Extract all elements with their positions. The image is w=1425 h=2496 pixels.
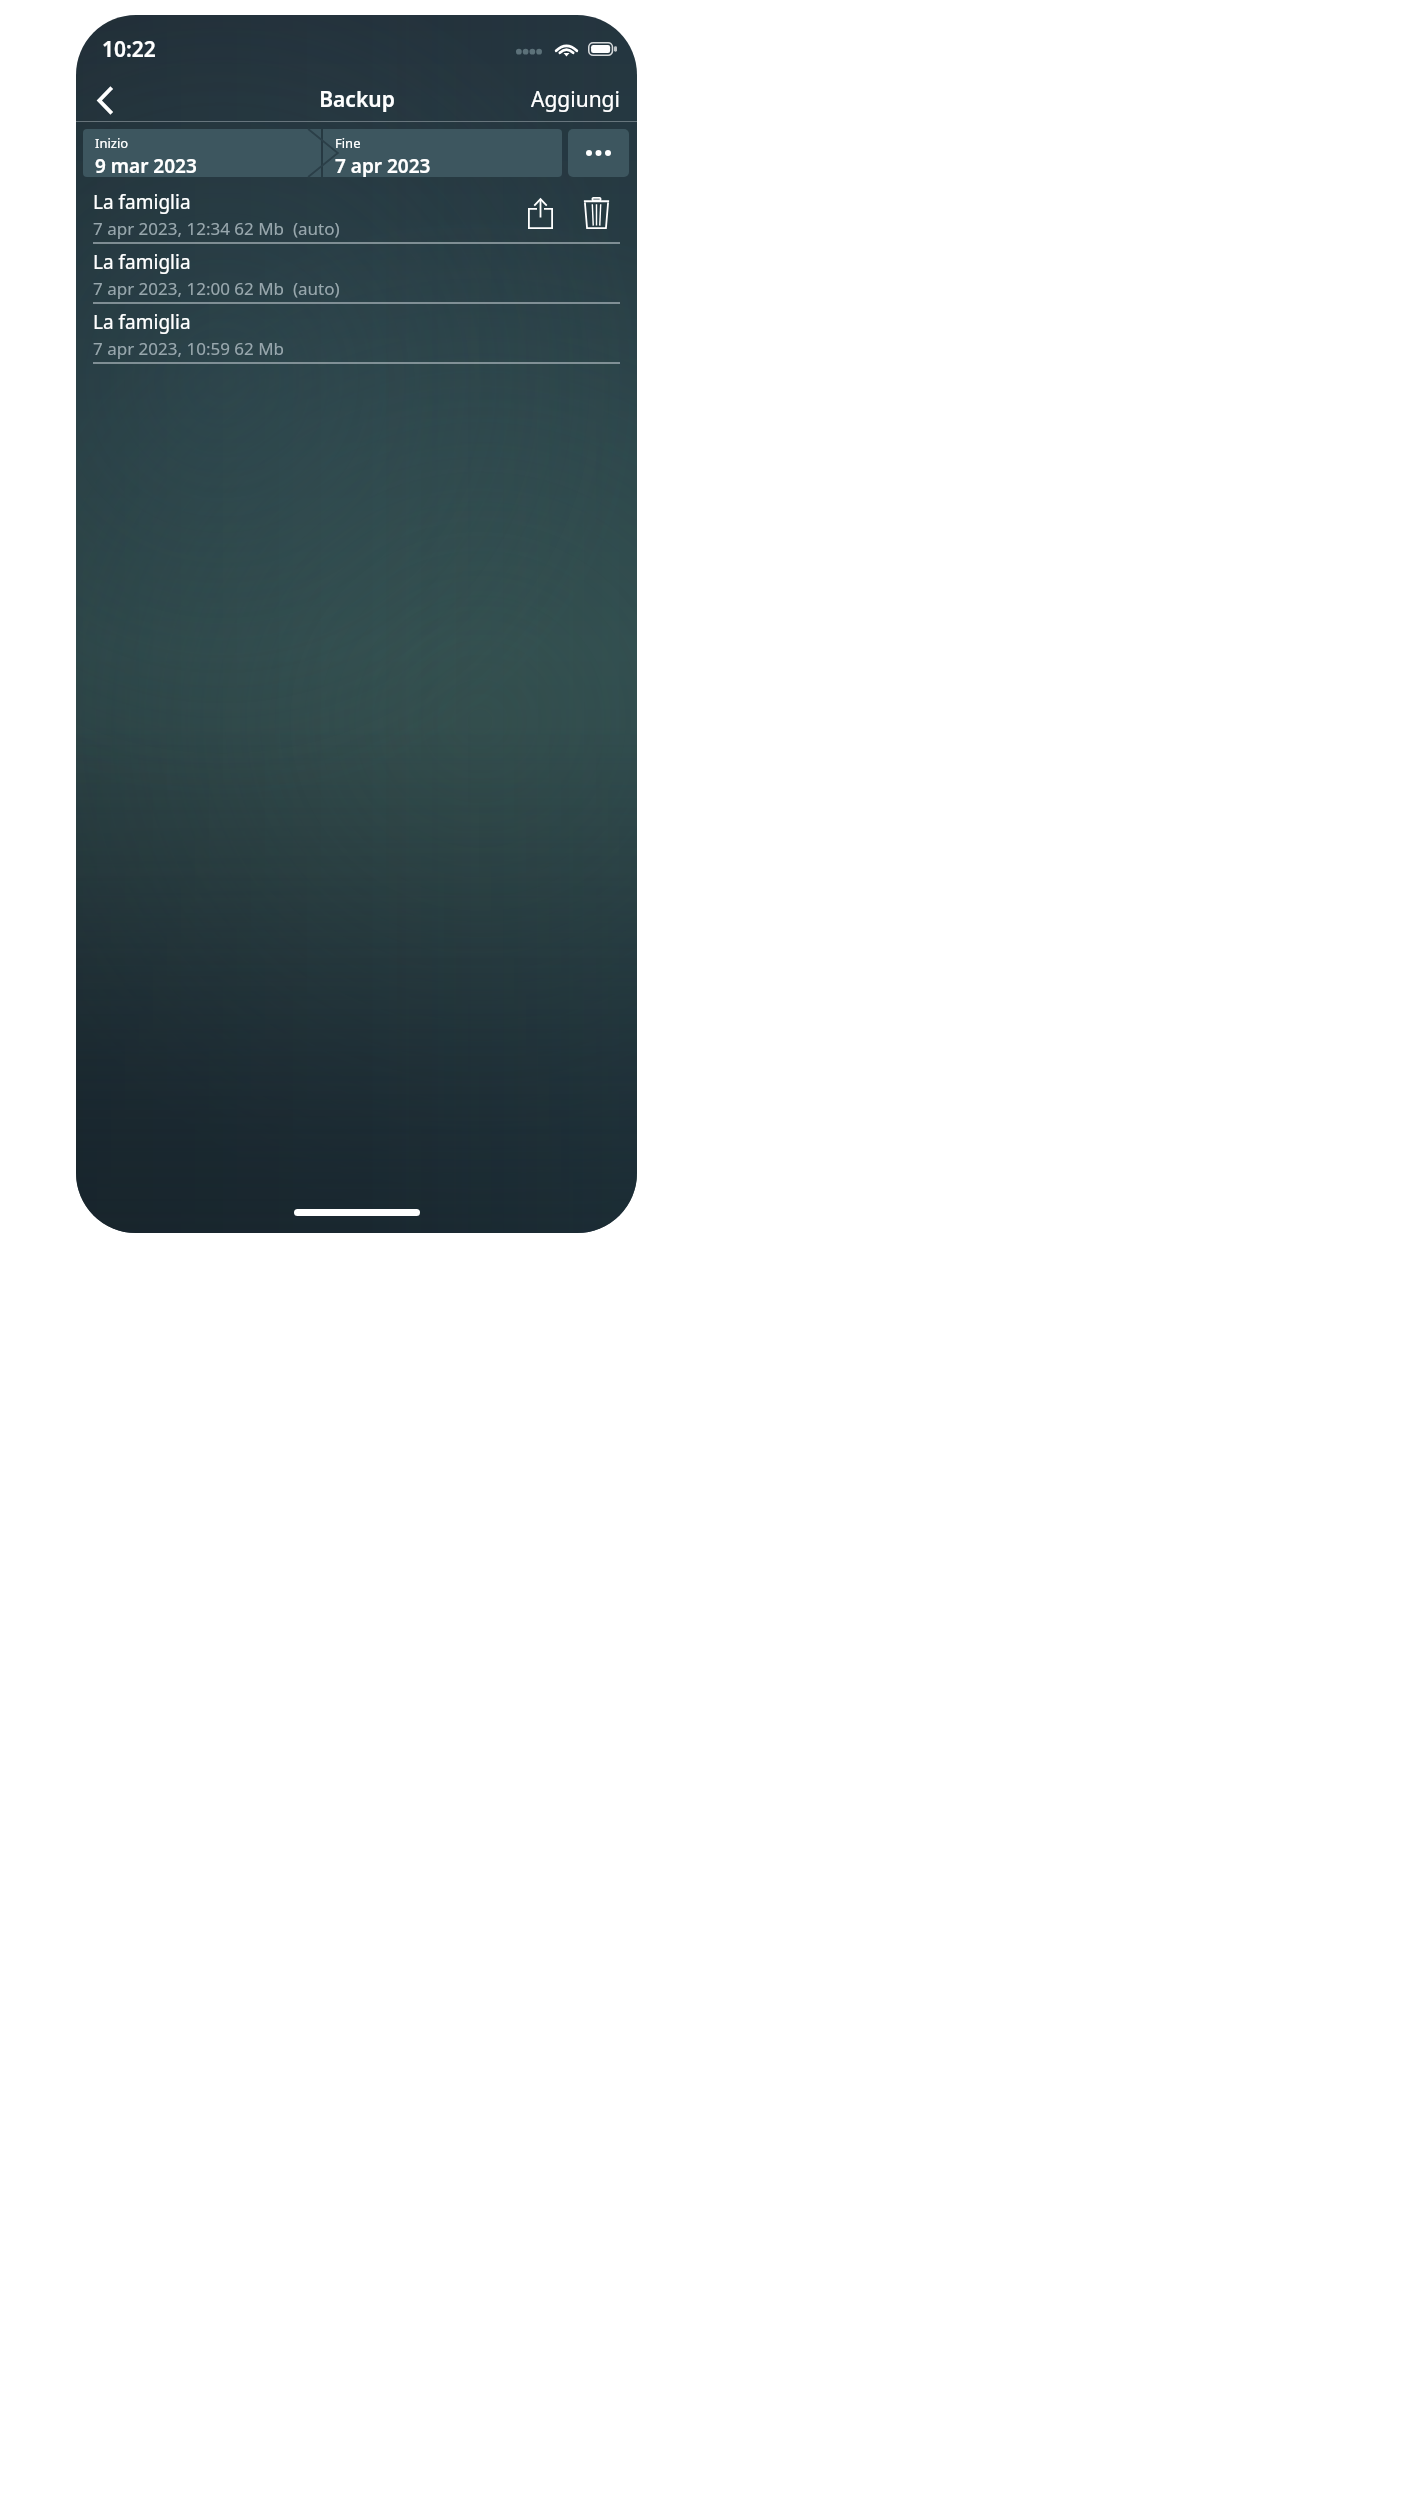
staticText: 7 apr 2023, 10:59 62 Mb <box>93 337 285 360</box>
button[interactable]: Share <box>518 191 562 235</box>
button[interactable]: More options <box>568 129 629 177</box>
staticText: Fine <box>335 134 361 152</box>
button[interactable]: Fine <box>323 129 562 177</box>
staticText: Backup <box>319 85 395 114</box>
button[interactable]: La famiglia <box>76 304 637 364</box>
staticText: Aggiungi <box>531 85 620 114</box>
button[interactable]: La famiglia <box>76 244 637 304</box>
button[interactable]: Aggiungi <box>514 78 637 121</box>
staticText: La famiglia <box>93 309 191 335</box>
button[interactable]: Back <box>82 78 126 122</box>
staticText: 9 mar 2023 <box>95 153 197 177</box>
staticText: 7 apr 2023, 12:34 62 Mb (auto) <box>93 217 340 240</box>
button[interactable]: Inizio <box>83 129 321 177</box>
staticText: La famiglia <box>93 249 191 275</box>
staticText: 10:22 <box>102 35 156 64</box>
button[interactable]: Delete <box>574 191 618 235</box>
staticText: La famiglia <box>93 189 191 215</box>
staticText: Inizio <box>95 134 129 152</box>
staticText: 7 apr 2023 <box>335 153 431 177</box>
button[interactable]: La famiglia <box>76 184 637 244</box>
staticText: 7 apr 2023, 12:00 62 Mb (auto) <box>93 277 340 300</box>
